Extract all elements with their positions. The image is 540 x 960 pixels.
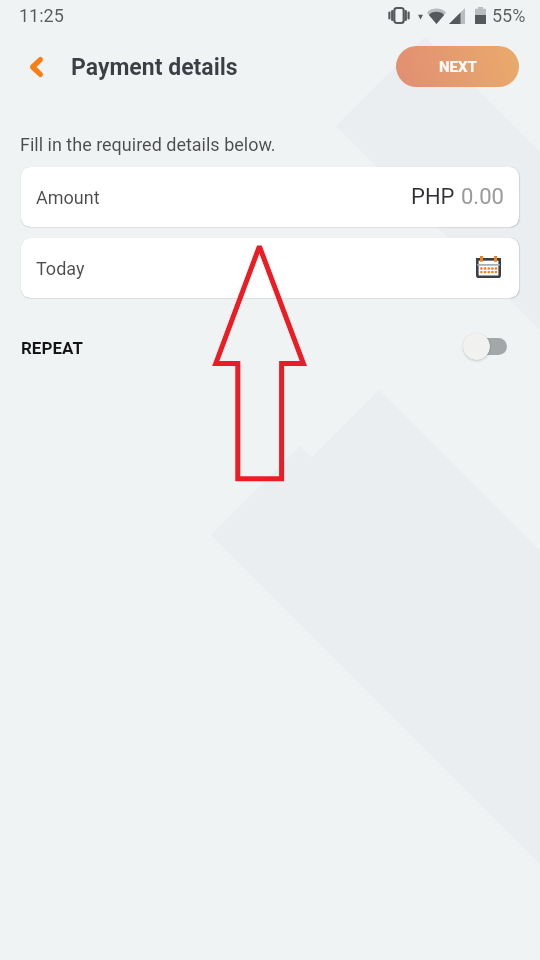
staticText: NEXT bbox=[439, 58, 477, 76]
staticText: Fill in the required details below. bbox=[20, 134, 276, 155]
button[interactable]: Pick date bbox=[476, 258, 501, 278]
button[interactable]: Back bbox=[12, 43, 60, 91]
staticText: 55% bbox=[492, 5, 526, 26]
staticText: Amount bbox=[36, 187, 100, 208]
button[interactable]: Amount bbox=[21, 167, 519, 227]
button[interactable]: Repeat toggle bbox=[463, 332, 509, 362]
staticText: Today bbox=[36, 258, 85, 279]
staticText: Payment details bbox=[71, 54, 238, 81]
staticText: 0.00 bbox=[461, 184, 504, 210]
staticText: PHP bbox=[411, 184, 455, 210]
staticText: REPEAT bbox=[21, 338, 83, 358]
staticText: 11:25 bbox=[19, 5, 64, 26]
button[interactable]: NEXT bbox=[396, 46, 519, 87]
button[interactable]: Today bbox=[21, 238, 519, 298]
